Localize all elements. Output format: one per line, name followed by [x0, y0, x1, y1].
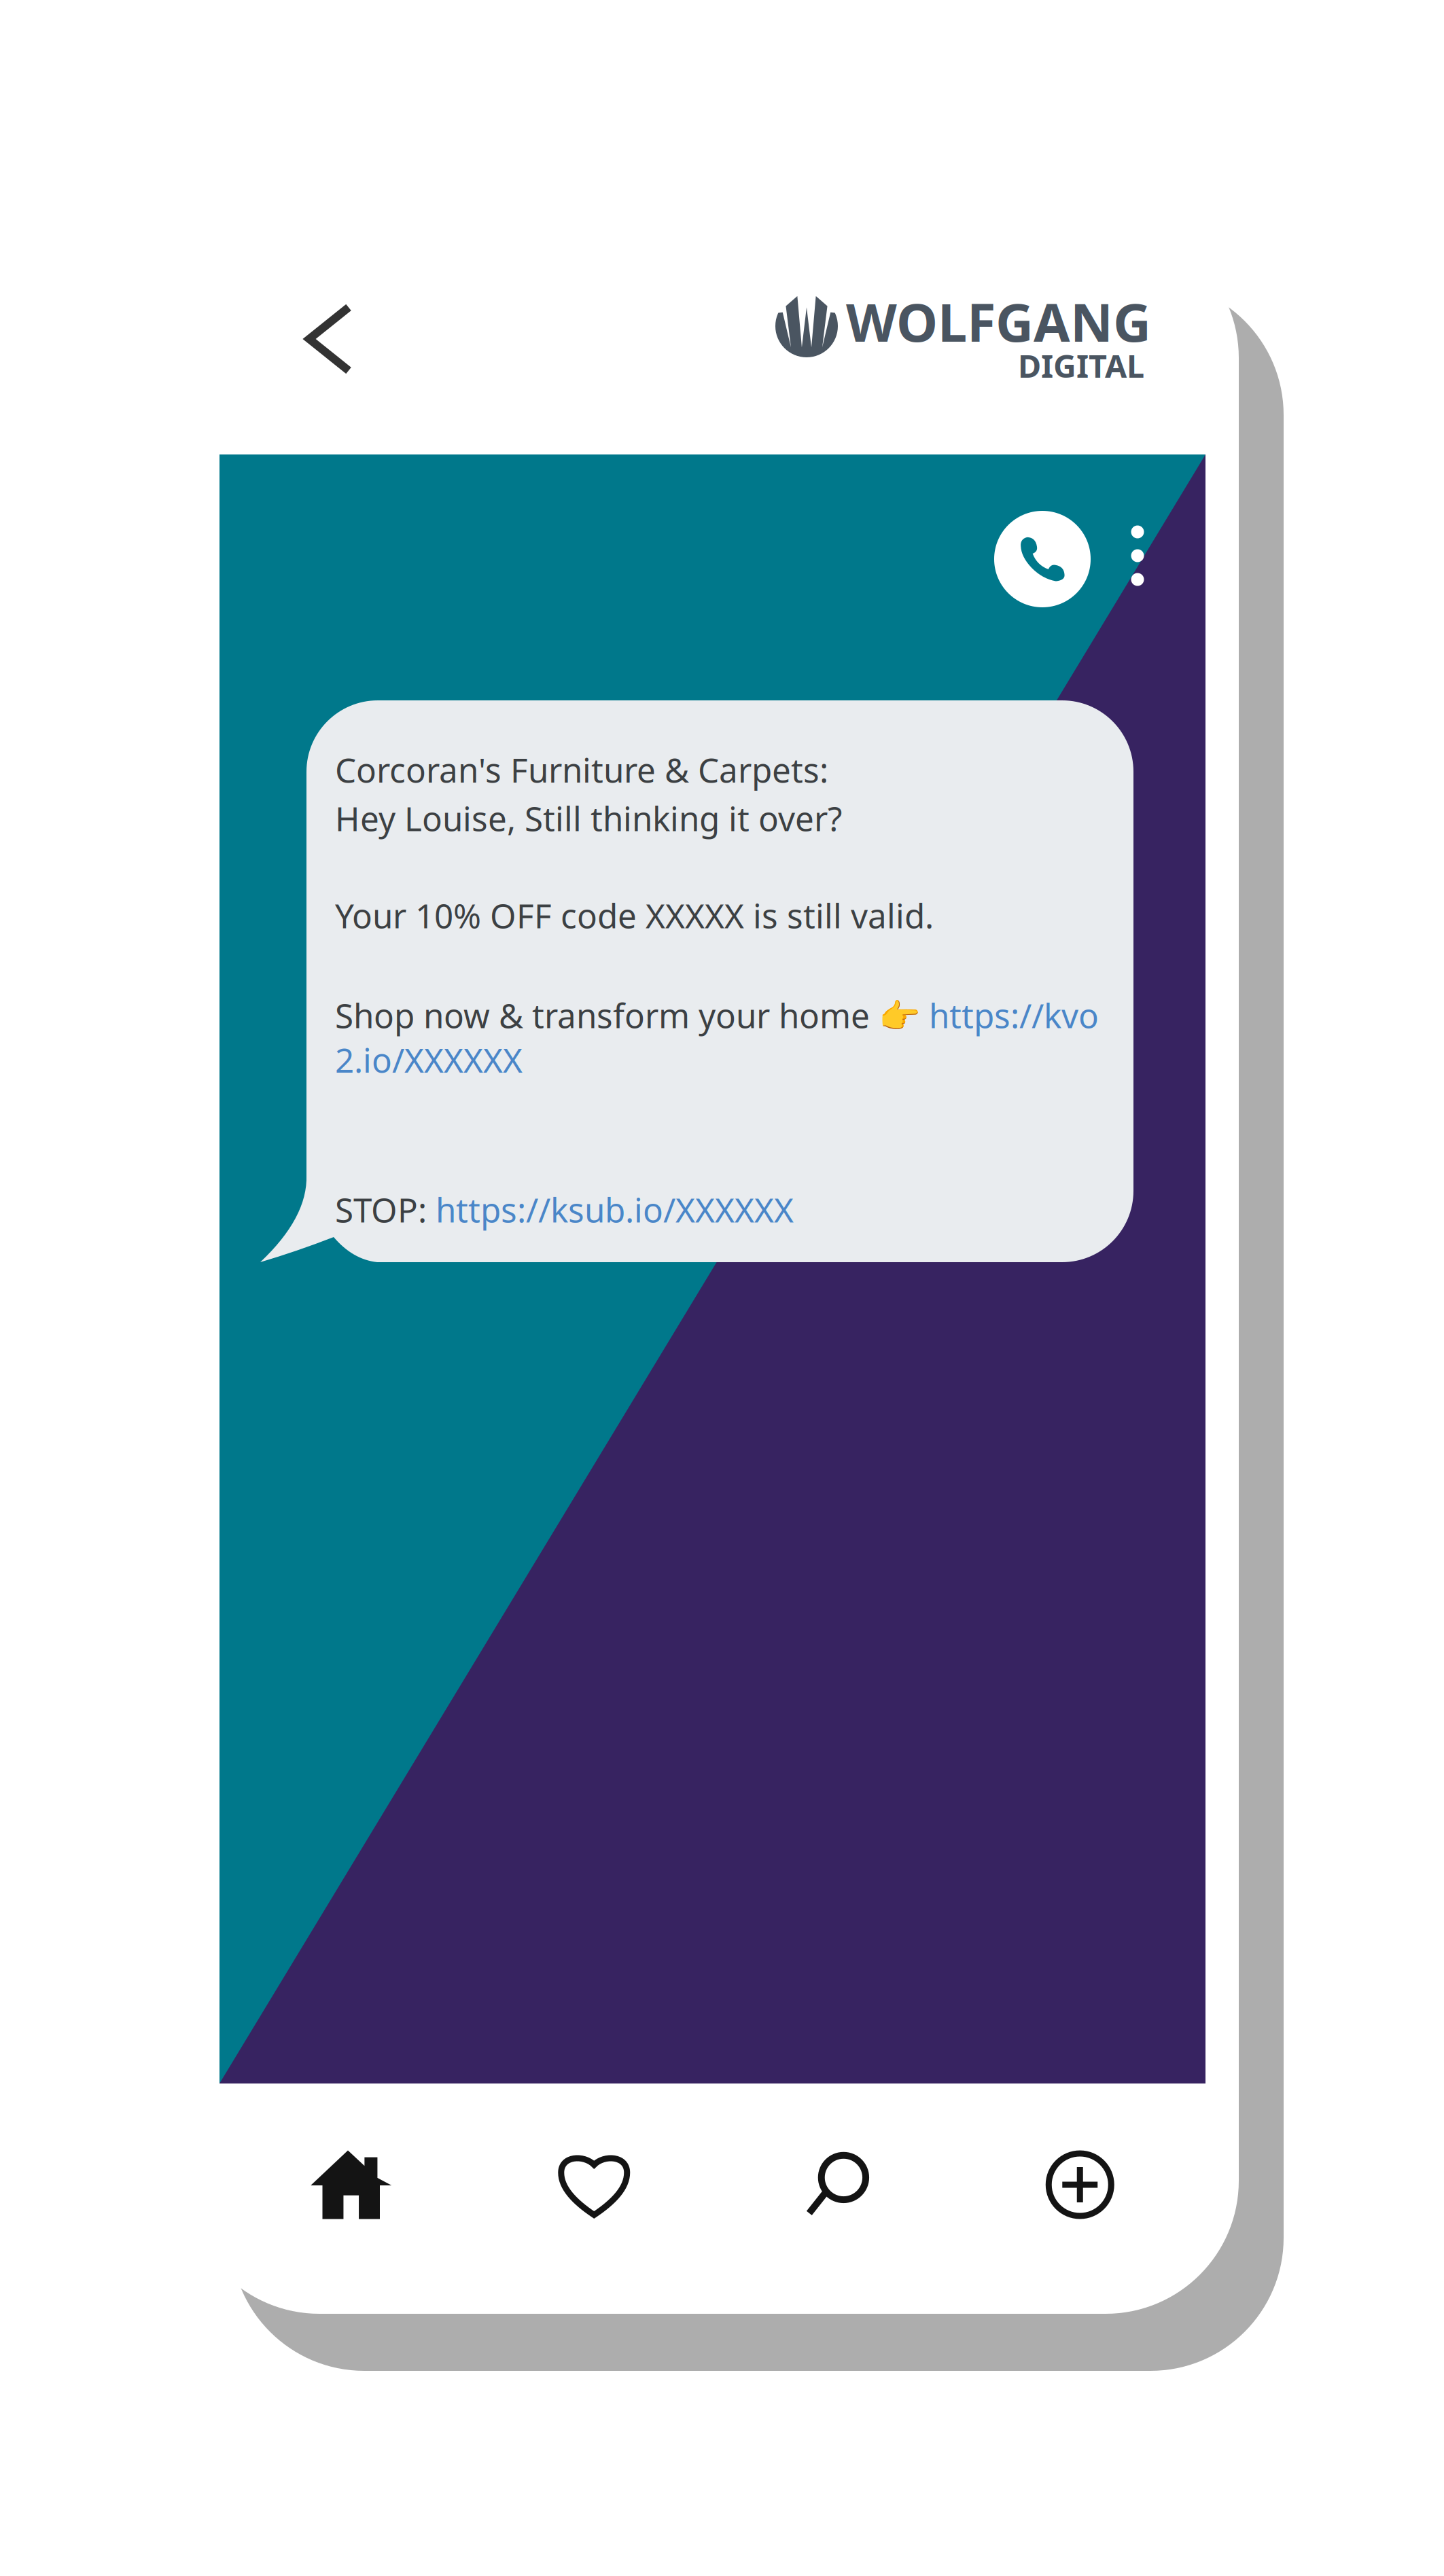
button[interactable]: More options — [1110, 508, 1165, 603]
staticText: https://kvo — [929, 993, 1099, 1037]
staticText: Your 10% OFF code XXXXX is still valid. — [335, 893, 934, 937]
button[interactable]: Likes — [473, 2127, 716, 2242]
staticText: WOLFGANG — [846, 286, 1151, 356]
staticText: Shop now & transform your home 👉 — [335, 993, 929, 1037]
staticText: DIGITAL — [1018, 344, 1144, 387]
button[interactable]: Back — [278, 281, 380, 397]
staticText: Corcoran's Furniture & Carpets: — [335, 747, 828, 792]
staticText: Hey Louise, Still thinking it over? — [335, 796, 842, 840]
staticText: STOP: — [335, 1187, 436, 1232]
staticText: 2.io/XXXXXX — [335, 1037, 523, 1082]
button[interactable]: Create — [958, 2127, 1201, 2242]
staticText: https://ksub.io/XXXXXX — [436, 1187, 794, 1232]
button[interactable]: Search — [716, 2127, 958, 2242]
button[interactable]: Home — [230, 2127, 473, 2242]
button[interactable]: Call — [994, 511, 1091, 607]
